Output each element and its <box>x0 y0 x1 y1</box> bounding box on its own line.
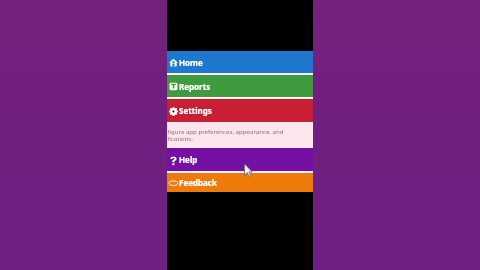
button[interactable]: Feedback <box>167 173 313 192</box>
button[interactable]: Reports <box>167 75 313 97</box>
button[interactable]: Settings <box>167 99 313 122</box>
staticText: Reports <box>179 81 211 92</box>
staticText: Settings <box>179 105 212 116</box>
staticText: Help <box>179 154 198 165</box>
staticText: Configure app preferences, appearance, a… <box>167 127 294 143</box>
staticText: Home <box>179 57 203 68</box>
button[interactable]: Home <box>167 51 313 73</box>
staticText: Feedback <box>179 177 217 188</box>
button[interactable]: Help <box>167 148 313 171</box>
